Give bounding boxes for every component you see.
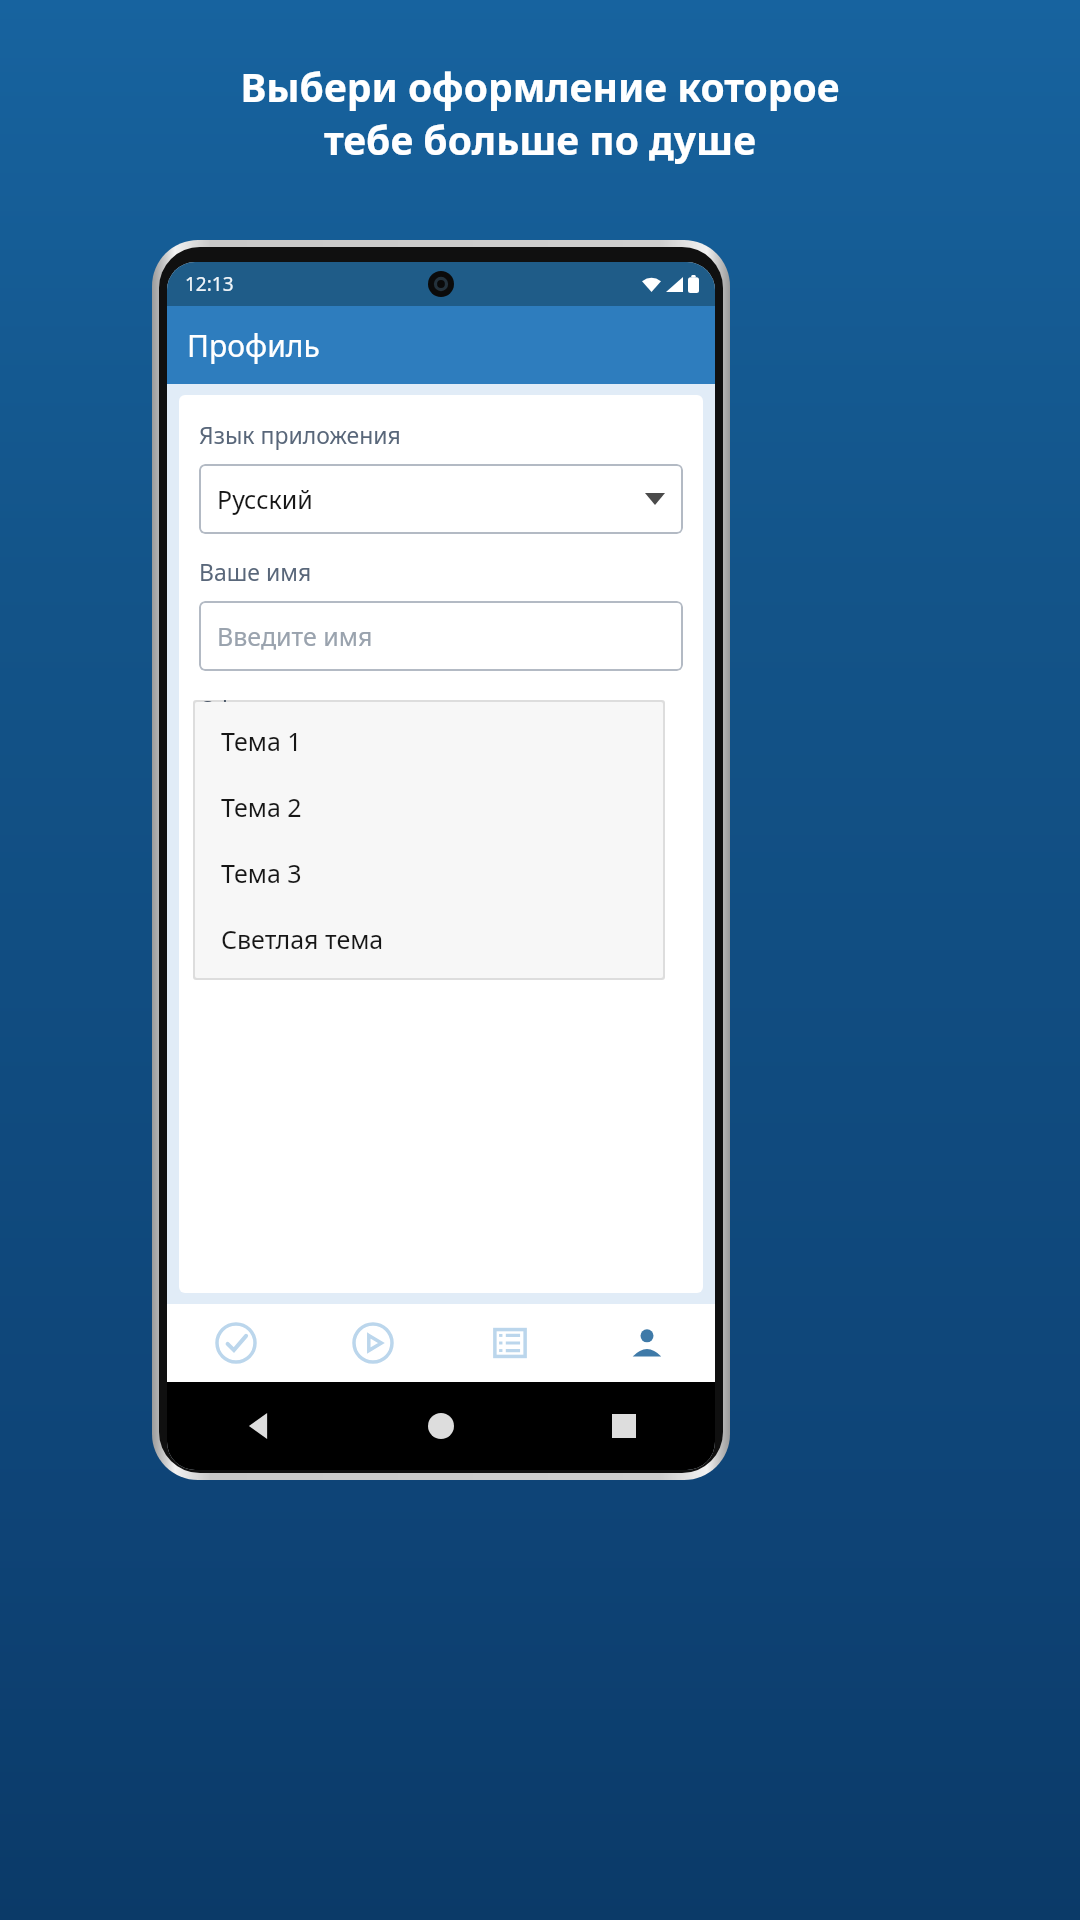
button[interactable]: Tasks: [167, 1304, 304, 1382]
staticText: Тема 1: [221, 724, 302, 758]
staticText: Ваше имя: [199, 556, 312, 587]
button[interactable]: Русский: [199, 464, 683, 534]
button[interactable]: Светлая тема: [195, 906, 663, 972]
button[interactable]: Home: [349, 1382, 532, 1470]
staticText: 12:13: [185, 271, 234, 297]
staticText: Профиль: [187, 325, 320, 366]
button[interactable]: Play: [304, 1304, 441, 1382]
button[interactable]: Тема 2: [195, 774, 663, 840]
button[interactable]: Back: [167, 1382, 349, 1470]
button[interactable]: Введите имя: [199, 601, 683, 671]
button[interactable]: List: [441, 1304, 578, 1382]
button[interactable]: Тема 3: [195, 840, 663, 906]
staticText: Русский: [217, 482, 313, 516]
staticText: Выбери оформление которое тебе больше по…: [240, 60, 840, 166]
staticText: Тема 3: [221, 856, 302, 890]
staticText: Оформление приложения: [199, 693, 493, 724]
button[interactable]: Тема 1: [195, 708, 663, 774]
staticText: Тема 2: [221, 790, 302, 824]
button[interactable]: Recents: [532, 1382, 715, 1470]
staticText: Язык приложения: [199, 419, 401, 450]
button[interactable]: Profile: [578, 1304, 715, 1382]
staticText: Введите имя: [217, 619, 373, 653]
staticText: Светлая тема: [221, 922, 384, 956]
